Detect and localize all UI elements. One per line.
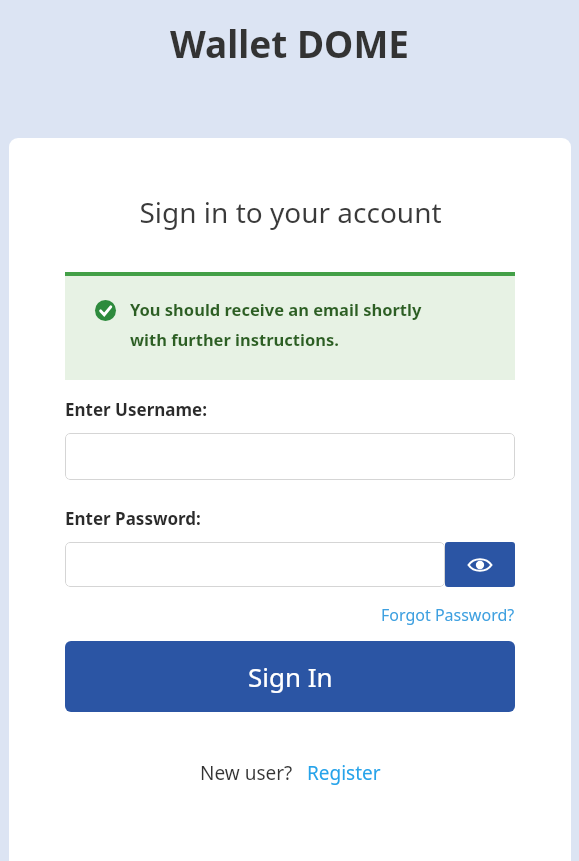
button[interactable]: Forgot Password?: [381, 604, 515, 626]
staticText: You should receive an email shortly with…: [130, 298, 422, 351]
button[interactable]: Show password: [445, 542, 515, 587]
staticText: Sign In: [248, 659, 333, 694]
button[interactable]: Sign In: [65, 641, 515, 712]
staticText: Enter Password:: [65, 507, 201, 530]
button[interactable]: Register: [307, 760, 381, 786]
button[interactable]: [65, 542, 445, 587]
staticText: New user?: [200, 760, 293, 786]
staticText: Enter Username:: [65, 398, 207, 421]
button[interactable]: [65, 433, 515, 480]
staticText: Wallet DOME: [170, 18, 409, 68]
staticText: Sign in to your account: [139, 193, 442, 231]
